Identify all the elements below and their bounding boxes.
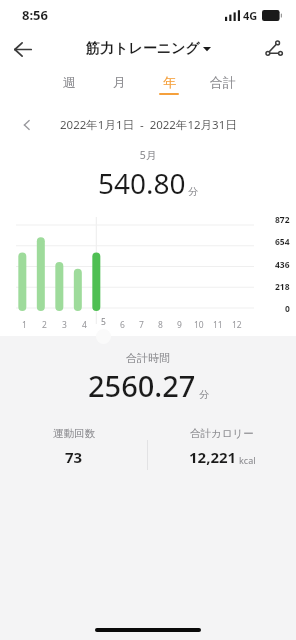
staticText: kcal [239, 454, 256, 466]
staticText: 7 [139, 319, 144, 331]
staticText: 合計 [210, 74, 236, 90]
staticText: 年 [163, 74, 176, 90]
staticText: 436 [275, 259, 290, 271]
staticText: 週 [63, 74, 76, 90]
staticText: 5 [101, 316, 106, 328]
staticText: 73 [65, 447, 83, 467]
staticText: 月 [113, 74, 126, 90]
staticText: 2560.27 [88, 366, 196, 405]
staticText: 0 [285, 303, 290, 315]
button[interactable]: 月 [94, 68, 144, 100]
staticText: 8 [158, 319, 163, 331]
staticText: 10 [194, 319, 204, 331]
staticText: 12,221 [189, 447, 237, 467]
staticText: 4 [82, 319, 87, 331]
staticText: 654 [275, 236, 290, 248]
staticText: 3 [62, 319, 67, 331]
staticText: 5月 [0, 148, 296, 162]
staticText: 運動回数 [53, 427, 95, 440]
button[interactable]: 年 [144, 68, 194, 100]
staticText: 540.80 [98, 164, 186, 202]
button[interactable]: 合計 [194, 68, 252, 100]
staticText: 1 [22, 319, 27, 331]
staticText: 合計カロリー [190, 427, 254, 440]
staticText: 分 [188, 185, 198, 198]
staticText: 872 [275, 214, 290, 226]
button[interactable]: 筋力トレーニング [82, 38, 215, 60]
button[interactable]: Back [0, 30, 44, 68]
staticText: 9 [177, 319, 182, 331]
staticText: 6 [120, 319, 125, 331]
button[interactable]: 合計カロリー [148, 427, 296, 467]
staticText: 11 [213, 319, 223, 331]
staticText: 4G [243, 8, 258, 23]
button[interactable]: Previous period [14, 114, 40, 136]
button[interactable]: 運動回数 [0, 427, 147, 467]
staticText: 分 [199, 388, 209, 401]
staticText: 2 [42, 319, 47, 331]
staticText: 12 [232, 319, 242, 331]
staticText: 8:56 [22, 6, 48, 24]
staticText: 218 [275, 281, 290, 293]
staticText: 2022年1月1日 - 2022年12月31日 [60, 117, 237, 133]
staticText: 合計時間 [126, 351, 170, 365]
button[interactable]: 週 [44, 68, 94, 100]
staticText: 筋力トレーニング [86, 40, 200, 58]
button[interactable]: Share [252, 30, 296, 68]
